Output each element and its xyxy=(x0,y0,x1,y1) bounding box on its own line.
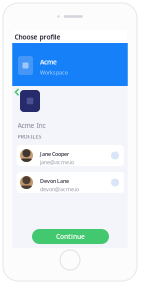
staticText: Choose profile xyxy=(14,33,60,41)
button[interactable]: Devon Lane xyxy=(16,172,124,193)
staticText: Workspace xyxy=(40,69,68,76)
staticText: Devon Lane xyxy=(40,177,69,184)
staticText: PROFILES xyxy=(17,133,41,140)
button[interactable]: Jane Cooper xyxy=(16,145,124,166)
staticText: Acme xyxy=(40,57,57,66)
staticText: devon@acme.io xyxy=(40,186,79,193)
button[interactable]: Back xyxy=(14,87,21,97)
staticText: Jane Cooper xyxy=(40,150,69,157)
staticText: jane@acme.io xyxy=(40,159,74,166)
button[interactable]: Continue xyxy=(32,229,109,244)
staticText: Acme Inc xyxy=(17,121,45,130)
staticText: Continue xyxy=(56,232,85,241)
